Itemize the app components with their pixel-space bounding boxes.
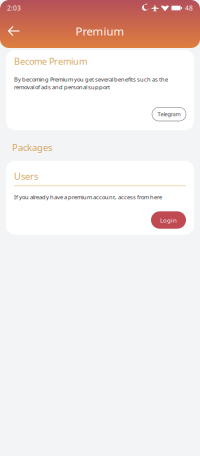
staticText: Packages xyxy=(12,141,52,154)
staticText: Premium xyxy=(75,23,124,39)
staticText: Telegram xyxy=(157,110,180,118)
button[interactable]: Login xyxy=(151,211,186,229)
staticText: Become Premium xyxy=(14,55,87,67)
staticText: Login xyxy=(160,216,177,224)
staticText: If you already have a premium account, a… xyxy=(14,193,162,201)
staticText: Users xyxy=(14,170,38,182)
button[interactable]: Telegram xyxy=(152,107,186,121)
staticText: By becoming Premium you get several bene… xyxy=(14,75,168,91)
staticText: 2:03 xyxy=(7,3,21,13)
staticText: 48 xyxy=(185,3,193,13)
button[interactable]: Back xyxy=(0,17,28,45)
